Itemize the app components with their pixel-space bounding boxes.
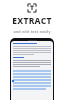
button[interactable]: Extract app icon <box>27 3 37 13</box>
staticText: and edit text easily <box>13 29 51 34</box>
button[interactable]: Phone preview of text selection <box>10 38 54 100</box>
staticText: EXTRACT <box>12 15 52 27</box>
